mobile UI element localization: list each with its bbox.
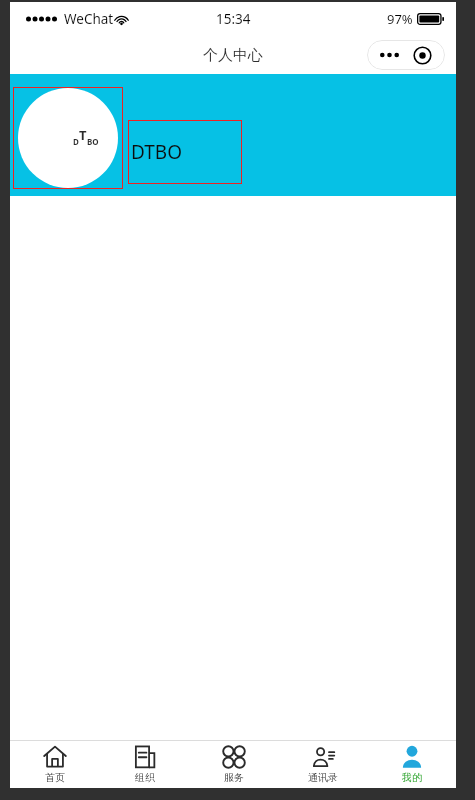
button[interactable]: 通讯录 [278,741,367,788]
staticText: 服务 [224,771,244,784]
staticText: WeChat [64,10,114,28]
staticText: 首页 [45,771,65,784]
staticText: D [73,136,79,147]
staticText: DTBO [131,139,183,165]
button[interactable]: 服务 [189,741,278,788]
staticText: 15:34 [216,10,251,28]
staticText: 通讯录 [308,771,338,784]
button[interactable]: DTBO [128,120,242,184]
button[interactable]: More options and close mini program [367,40,445,70]
button[interactable]: D [10,74,456,196]
button[interactable]: 我的 [367,741,456,788]
button[interactable]: 首页 [10,741,100,788]
staticText: BO [87,136,99,147]
staticText: 组织 [135,771,155,784]
button[interactable]: 组织 [100,741,189,788]
staticText: 我的 [402,771,422,784]
staticText: 个人中心 [203,46,263,65]
staticText: T [79,126,87,144]
staticText: 97% [387,10,413,28]
